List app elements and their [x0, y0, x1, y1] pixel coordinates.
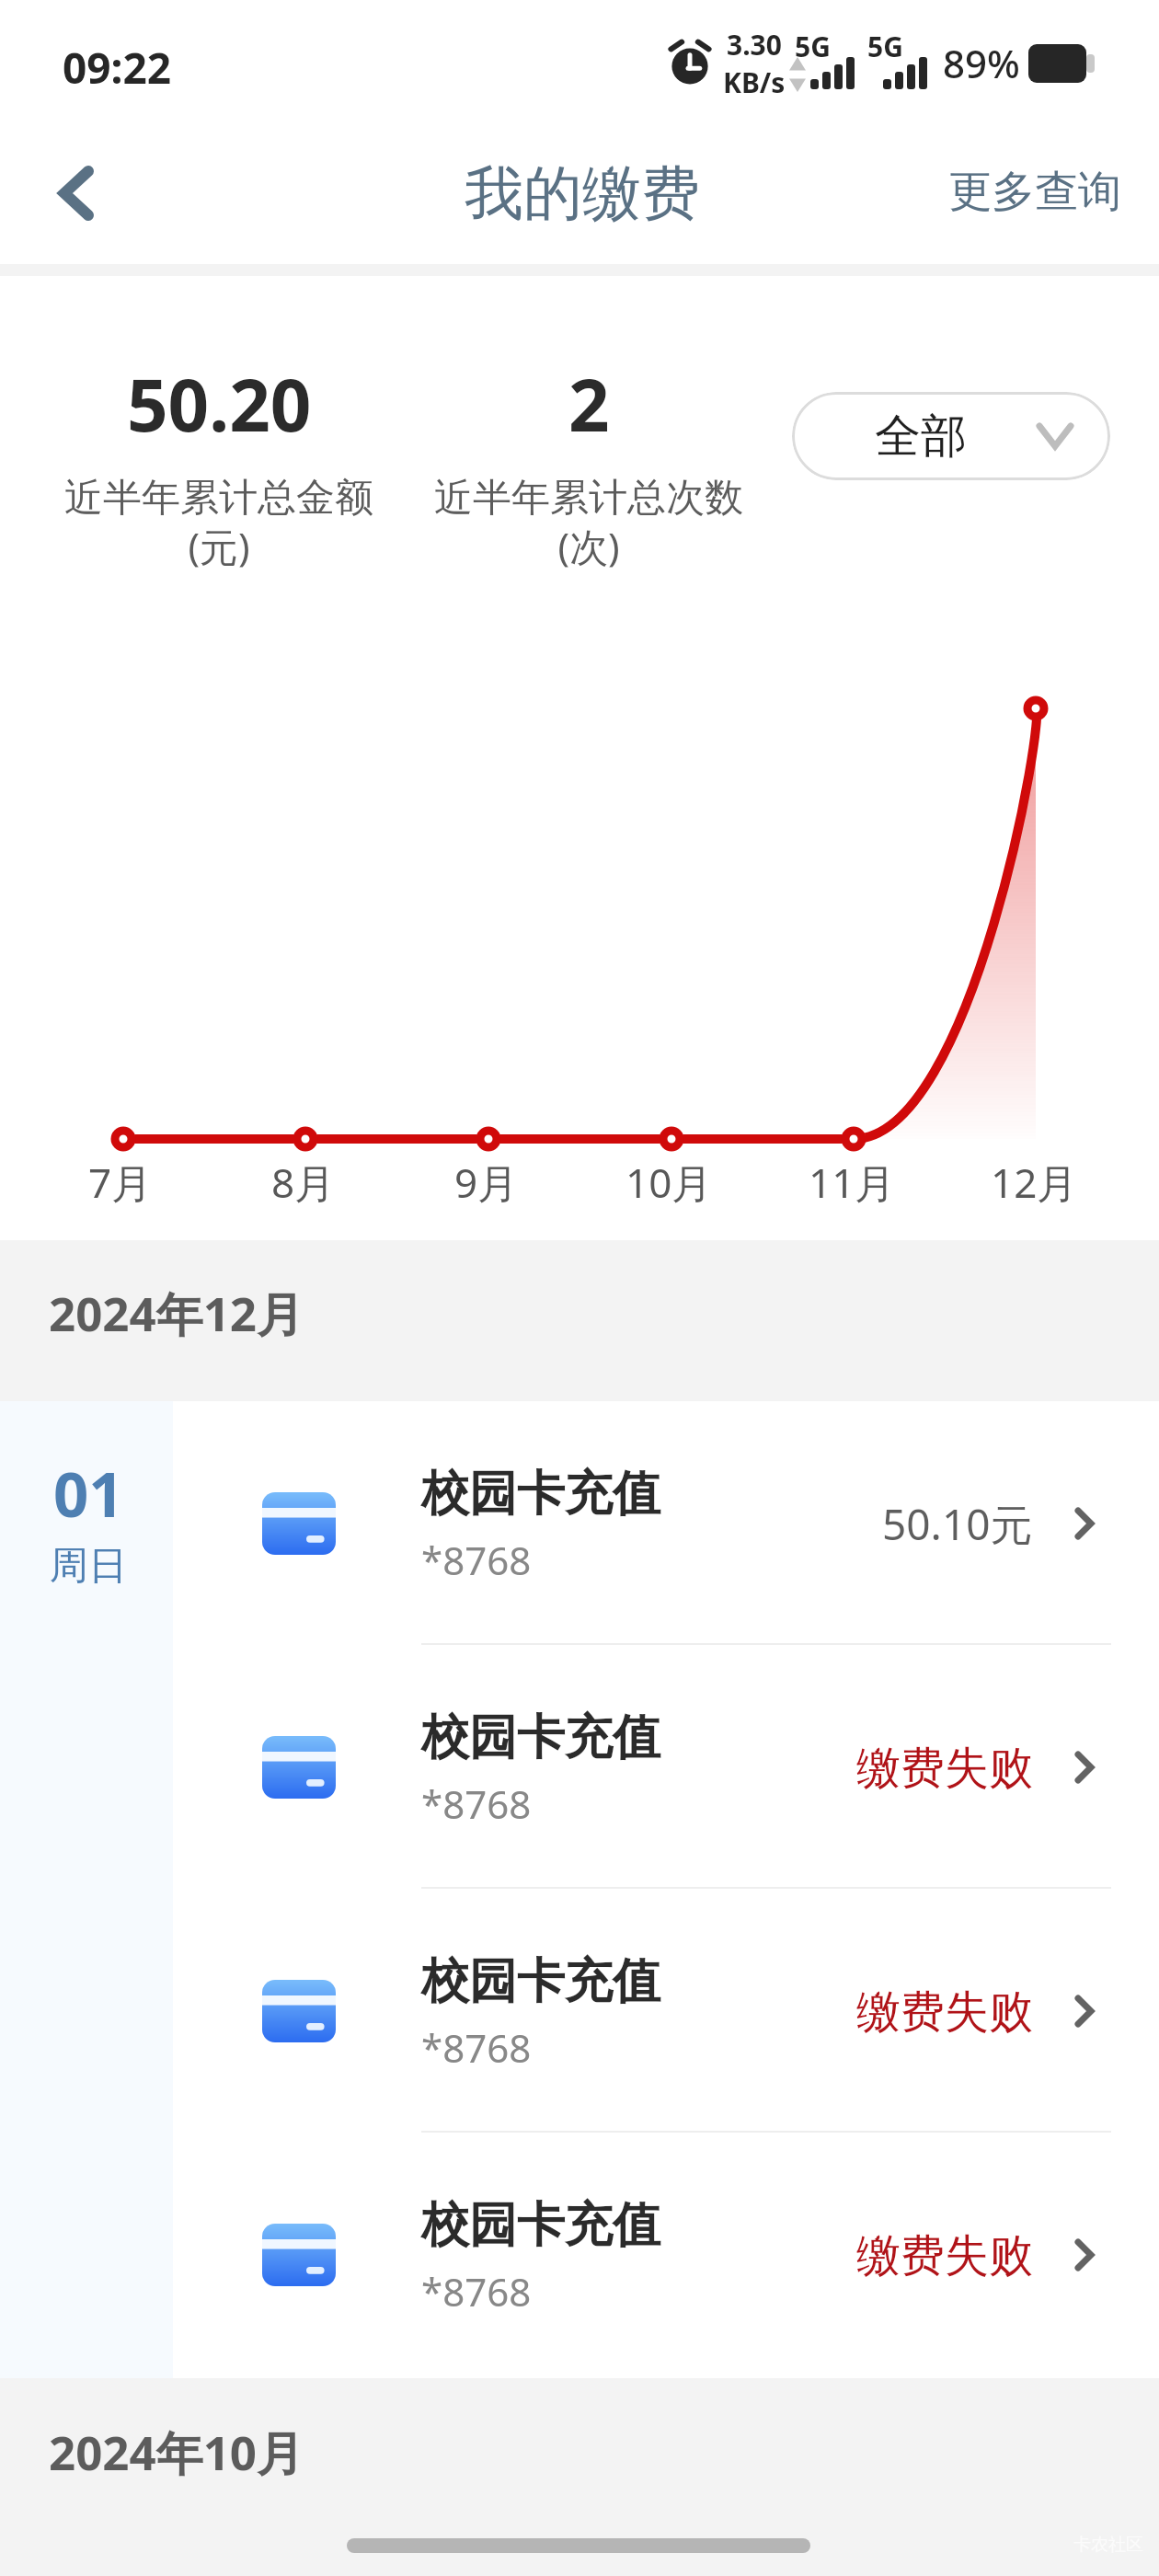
staticText: 周日	[50, 1542, 127, 1591]
staticText: 校园卡充值	[421, 1708, 660, 1768]
staticText: 近半年累计总金额 (元)	[64, 474, 373, 572]
staticText: 12月	[991, 1155, 1078, 1210]
staticText: 9月	[454, 1155, 519, 1210]
button[interactable]: 全部	[792, 392, 1110, 480]
staticText: KB/s	[723, 63, 786, 101]
button[interactable]: Back	[20, 127, 138, 256]
staticText: 50.20	[127, 355, 312, 453]
staticText: 近半年累计总次数 (次)	[434, 474, 743, 572]
staticText: 5G	[867, 28, 903, 65]
staticText: 我的缴费	[465, 156, 700, 231]
staticText: 7月	[88, 1155, 153, 1210]
staticText: 8月	[271, 1155, 336, 1210]
staticText: *8768	[421, 1777, 532, 1830]
staticText: *8768	[421, 1534, 532, 1586]
staticText: 11月	[809, 1155, 896, 1210]
staticText: 2	[568, 355, 610, 453]
staticText: 缴费失败	[856, 1741, 1033, 1796]
staticText: 01	[53, 1451, 124, 1535]
staticText: 更多查询	[948, 165, 1121, 219]
staticText: 2024年10月	[49, 2420, 304, 2484]
staticText: *8768	[421, 2265, 532, 2317]
staticText: 2024年12月	[49, 1281, 304, 1345]
staticText: 校园卡充值	[421, 2195, 660, 2256]
staticText: 全部	[875, 408, 967, 466]
button[interactable]: 校园卡充值	[173, 2133, 1159, 2376]
button[interactable]: 校园卡充值	[173, 1401, 1159, 1645]
staticText: 50.10元	[882, 1495, 1033, 1553]
staticText: *8768	[421, 2021, 532, 2074]
staticText: 校园卡充值	[421, 1951, 660, 2012]
staticText: 缴费失败	[856, 1984, 1033, 2040]
button[interactable]: 更多查询	[929, 145, 1141, 237]
staticText: 10月	[625, 1155, 713, 1210]
staticText: 5G	[795, 28, 831, 65]
button[interactable]: 校园卡充值	[173, 1889, 1159, 2133]
staticText: 校园卡充值	[421, 1464, 660, 1524]
staticText: 89%	[943, 37, 1020, 89]
staticText: 3.30	[727, 26, 782, 63]
button[interactable]: 校园卡充值	[173, 1645, 1159, 1889]
staticText: 缴费失败	[856, 2228, 1033, 2283]
staticText: 09:22	[63, 39, 172, 97]
